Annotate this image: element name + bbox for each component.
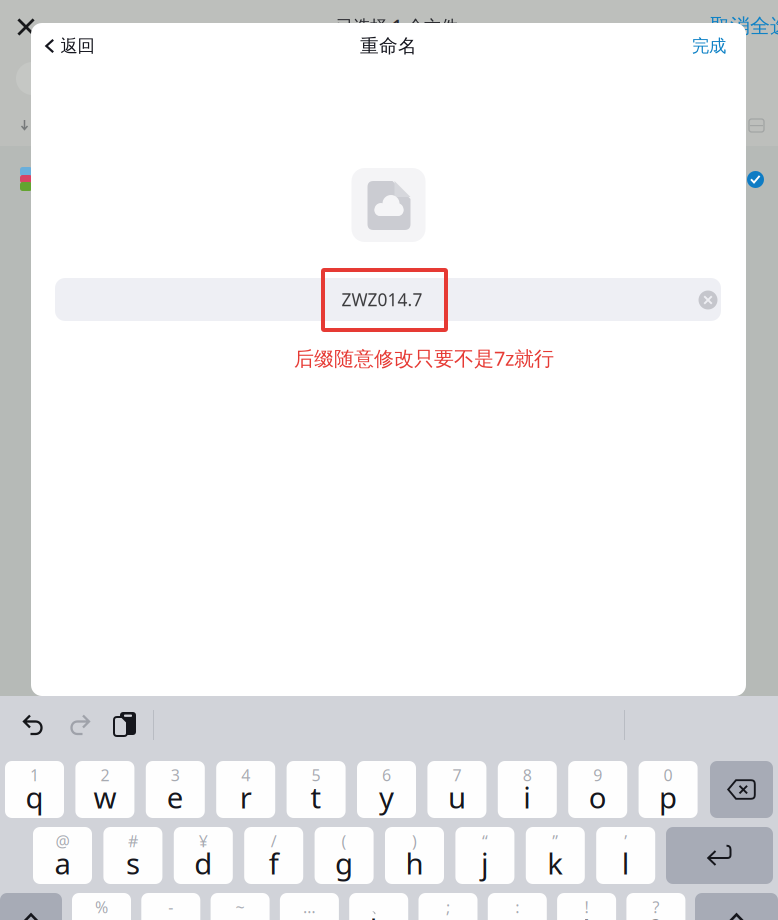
staticText: d xyxy=(194,843,212,882)
staticText: 已选择 1 个文件 xyxy=(336,14,458,37)
button[interactable]: ” xyxy=(526,827,585,884)
staticText: s xyxy=(126,843,140,882)
staticText: f xyxy=(269,843,279,882)
button[interactable]: Undo xyxy=(11,705,57,745)
staticText: … xyxy=(303,896,316,918)
staticText: - xyxy=(168,896,173,918)
staticText: / xyxy=(271,830,277,852)
staticText: v xyxy=(302,909,317,920)
staticText: 4 xyxy=(241,764,250,786)
staticText: ” xyxy=(552,830,558,852)
staticText: o xyxy=(589,777,607,816)
button[interactable]: Close xyxy=(7,8,45,46)
staticText: z xyxy=(94,909,108,920)
staticText: i xyxy=(523,777,531,816)
button[interactable]: Paste xyxy=(102,704,148,744)
button[interactable]: ~ xyxy=(211,893,270,920)
staticText: 返回 xyxy=(60,35,94,57)
staticText: 8 xyxy=(523,764,532,786)
button[interactable]: - xyxy=(141,893,200,920)
button[interactable]: ! xyxy=(557,893,616,920)
button[interactable]: 1 xyxy=(5,761,64,818)
button[interactable]: 6 xyxy=(357,761,416,818)
staticText: ? xyxy=(649,909,662,920)
staticText: ZWZ014.7 xyxy=(341,288,422,311)
button[interactable]: ; xyxy=(418,893,477,920)
button[interactable]: / xyxy=(244,827,303,884)
staticText: h xyxy=(405,843,423,882)
button[interactable]: @ xyxy=(33,827,92,884)
button[interactable]: Clear text xyxy=(691,283,725,317)
button[interactable]: 3 xyxy=(146,761,205,818)
staticText: t xyxy=(311,777,322,816)
button[interactable]: Shift xyxy=(695,893,778,920)
staticText: 2 xyxy=(100,764,109,786)
staticText: 重命名 xyxy=(360,34,417,57)
staticText: 0 xyxy=(664,764,673,786)
staticText: ’ xyxy=(624,830,627,852)
staticText: ? xyxy=(652,896,659,918)
button[interactable]: … xyxy=(280,893,339,920)
staticText: 9 xyxy=(593,764,602,786)
staticText: k xyxy=(547,843,563,882)
staticText: # xyxy=(128,830,138,852)
button[interactable]: Delete xyxy=(710,761,773,818)
button[interactable]: # xyxy=(103,827,162,884)
staticText: 后缀随意修改只要不是7z就行 xyxy=(294,345,554,371)
button[interactable]: ¥ xyxy=(174,827,233,884)
staticText: % xyxy=(95,896,108,918)
button[interactable]: 8 xyxy=(498,761,557,818)
button[interactable]: 0 xyxy=(639,761,698,818)
staticText: 1 xyxy=(30,764,39,786)
staticText: u xyxy=(448,777,466,816)
button[interactable]: ’ xyxy=(596,827,655,884)
staticText: 取消全选 xyxy=(710,14,778,38)
button[interactable]: Redo xyxy=(56,705,102,745)
button[interactable]: Return xyxy=(666,827,773,884)
staticText: : xyxy=(515,896,519,918)
button[interactable]: 5 xyxy=(287,761,346,818)
staticText: 5 xyxy=(312,764,321,786)
button[interactable]: ? xyxy=(626,893,685,920)
button[interactable]: : xyxy=(488,893,547,920)
staticText: ) xyxy=(412,830,417,852)
staticText: ( xyxy=(342,830,347,852)
staticText: 6 xyxy=(382,764,391,786)
staticText: ~ xyxy=(236,896,245,918)
staticText: @ xyxy=(55,830,69,852)
button[interactable]: 7 xyxy=(427,761,486,818)
staticText: l xyxy=(622,843,630,882)
button[interactable]: ( xyxy=(315,827,374,884)
button[interactable]: % xyxy=(72,893,131,920)
button[interactable]: 、 xyxy=(349,893,408,920)
staticText: a xyxy=(54,843,70,882)
staticText: w xyxy=(93,777,116,816)
button[interactable]: 返回 xyxy=(45,24,119,68)
staticText: m xyxy=(504,909,531,920)
staticText: q xyxy=(25,777,43,816)
staticText: “ xyxy=(482,830,488,852)
staticText: ! xyxy=(585,896,589,918)
staticText: g xyxy=(335,843,353,882)
staticText: 完成 xyxy=(692,35,726,57)
staticText: e xyxy=(167,777,184,816)
button[interactable]: ) xyxy=(385,827,444,884)
button[interactable]: Shift xyxy=(0,893,62,920)
button[interactable]: 2 xyxy=(75,761,134,818)
staticText: 7 xyxy=(452,764,461,786)
staticText: j xyxy=(481,843,489,882)
button[interactable]: “ xyxy=(455,827,514,884)
button[interactable]: 9 xyxy=(568,761,627,818)
staticText: ! xyxy=(583,909,591,920)
staticText: y xyxy=(379,777,394,816)
button[interactable]: 4 xyxy=(216,761,275,818)
staticText: 、 xyxy=(371,897,387,917)
staticText: r xyxy=(240,777,252,816)
staticText: p xyxy=(659,777,677,816)
button[interactable]: 完成 xyxy=(656,24,726,68)
staticText: n xyxy=(439,909,457,920)
staticText: ; xyxy=(446,896,450,918)
staticText: b xyxy=(370,909,388,920)
